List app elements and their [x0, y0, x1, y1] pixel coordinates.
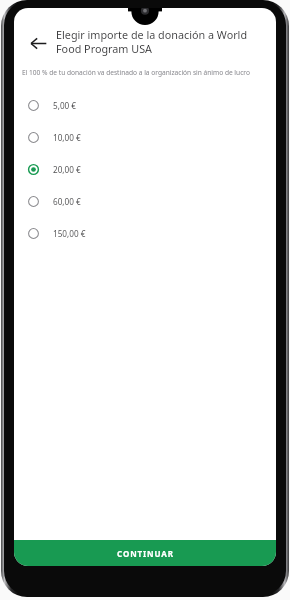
button[interactable]: 60,00 € [14, 185, 276, 217]
staticText: 5,00 € [53, 100, 77, 111]
button[interactable]: Atrás [20, 25, 56, 61]
staticText: CONTINUAR [117, 548, 174, 559]
staticText: 150,00 € [53, 228, 86, 239]
staticText: 60,00 € [53, 196, 81, 207]
button[interactable]: 150,00 € [14, 217, 276, 249]
button[interactable]: 20,00 € [14, 153, 276, 185]
button[interactable]: 5,00 € [14, 89, 276, 121]
staticText: Elegir importe de la donación a World Fo… [56, 27, 266, 56]
button[interactable]: CONTINUAR [14, 540, 276, 566]
staticText: El 100 % de tu donación va destinado a l… [22, 68, 268, 77]
button[interactable]: 10,00 € [14, 121, 276, 153]
staticText: 10,00 € [53, 132, 81, 143]
staticText: 20,00 € [53, 164, 81, 175]
